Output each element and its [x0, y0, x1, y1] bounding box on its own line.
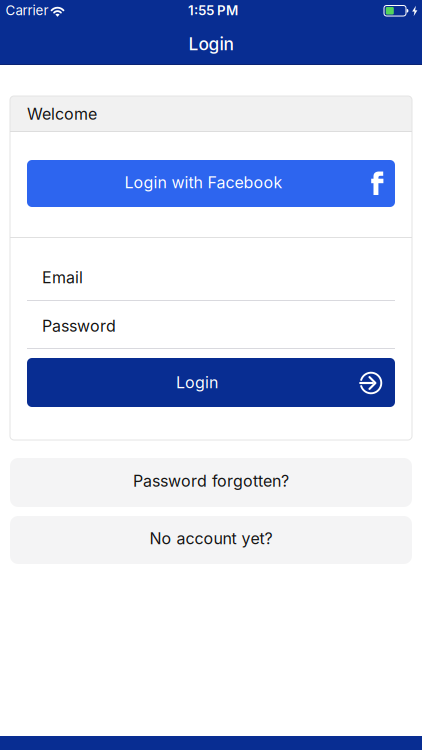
staticText: Password forgotten?: [133, 472, 289, 490]
staticText: 1:55 PM: [188, 3, 238, 18]
staticText: Password: [42, 317, 116, 335]
staticText: Login: [176, 373, 218, 392]
staticText: No account yet?: [149, 529, 272, 548]
button[interactable]: No account yet?: [10, 516, 412, 564]
staticText: Login with Facebook: [124, 173, 282, 192]
staticText: Welcome: [27, 105, 97, 123]
button[interactable]: Login with Facebook: [27, 160, 395, 207]
staticText: Login: [188, 34, 233, 54]
button[interactable]: Login: [27, 358, 395, 407]
button[interactable]: Password forgotten?: [10, 458, 412, 507]
staticText: Carrier: [5, 3, 48, 18]
staticText: Email: [42, 268, 83, 287]
